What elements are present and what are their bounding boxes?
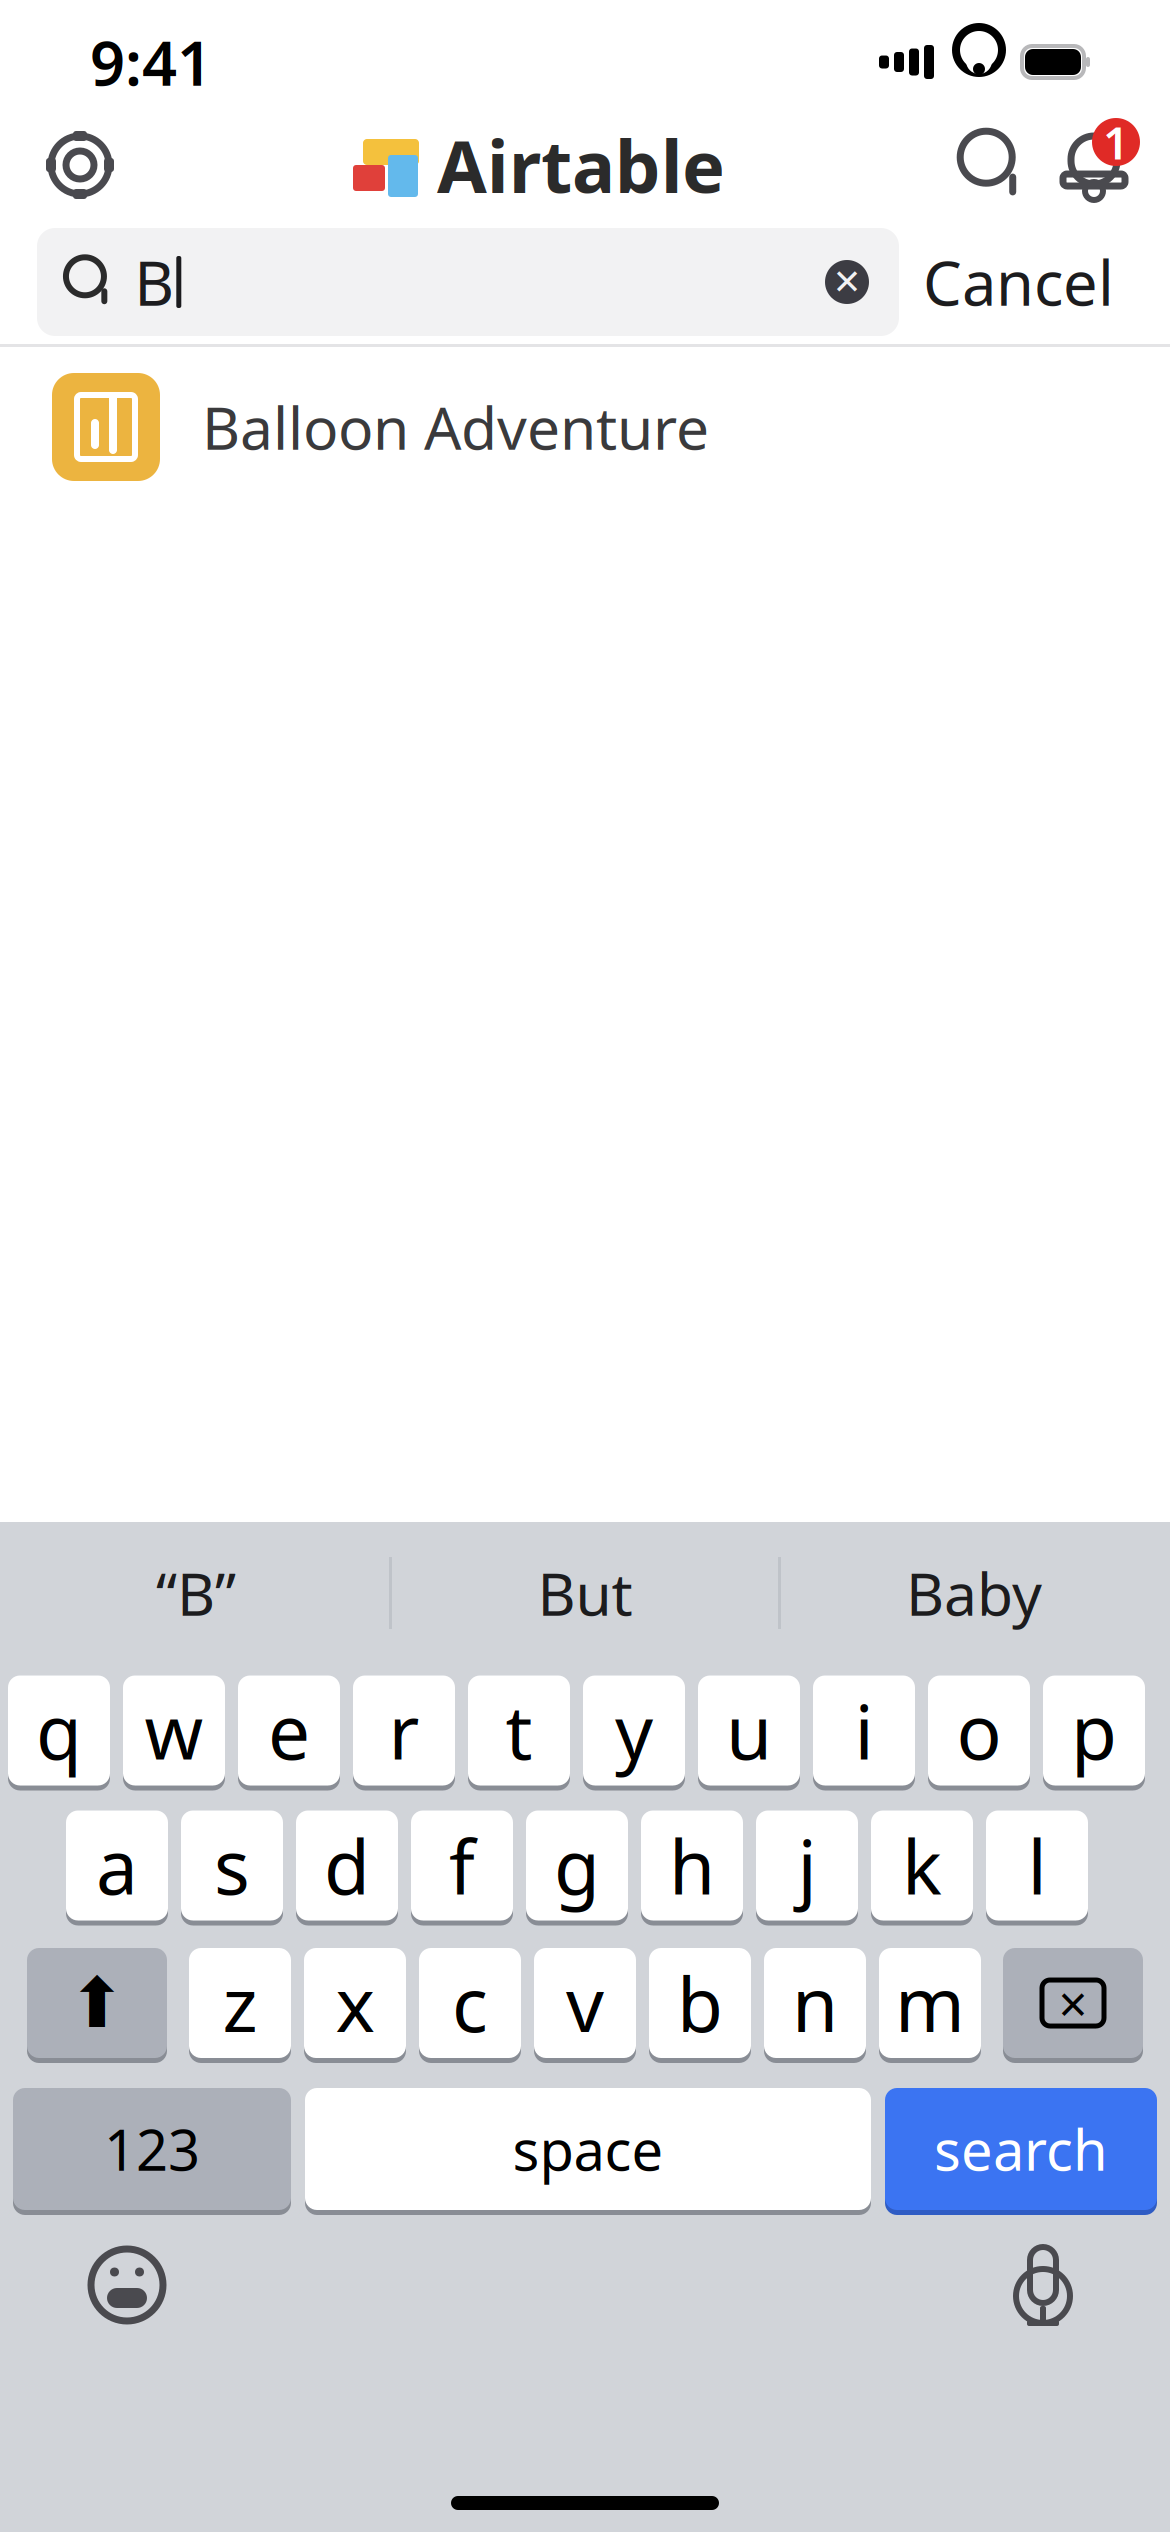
button[interactable]: h bbox=[641, 1810, 743, 1925]
staticText: B bbox=[134, 241, 174, 323]
staticText: o bbox=[956, 1681, 1001, 1780]
staticText: Cancel bbox=[923, 241, 1114, 323]
staticText: h bbox=[669, 1816, 715, 1915]
staticText: Airtable bbox=[437, 117, 725, 213]
button[interactable]: u bbox=[698, 1675, 800, 1790]
staticText: c bbox=[452, 1953, 488, 2053]
button[interactable]: k bbox=[871, 1810, 973, 1925]
staticText: z bbox=[222, 1953, 257, 2053]
staticText: s bbox=[214, 1816, 250, 1915]
staticText: e bbox=[268, 1681, 310, 1780]
staticText: b bbox=[677, 1953, 723, 2053]
button[interactable]: Shift bbox=[27, 1948, 167, 2063]
button[interactable]: d bbox=[296, 1810, 398, 1925]
staticText: w bbox=[144, 1681, 203, 1780]
staticText: “B” bbox=[156, 1554, 236, 1632]
button[interactable]: search bbox=[885, 2088, 1157, 2215]
button[interactable]: Notifications bbox=[1042, 117, 1146, 213]
button[interactable]: i bbox=[813, 1675, 915, 1790]
button[interactable]: Settings bbox=[32, 117, 128, 213]
button[interactable]: But bbox=[392, 1522, 778, 1664]
button[interactable]: g bbox=[526, 1810, 628, 1925]
staticText: t bbox=[505, 1681, 532, 1780]
staticText: 123 bbox=[104, 2112, 200, 2186]
button[interactable]: b bbox=[649, 1948, 751, 2063]
button[interactable]: Balloon Adventure bbox=[0, 347, 1170, 507]
staticText: j bbox=[797, 1816, 816, 1915]
staticText: k bbox=[902, 1816, 942, 1915]
button[interactable]: “B” bbox=[3, 1522, 389, 1664]
staticText: f bbox=[449, 1816, 475, 1915]
button[interactable]: c bbox=[419, 1948, 521, 2063]
staticText: Baby bbox=[906, 1554, 1042, 1632]
staticText: Balloon Adventure bbox=[202, 388, 709, 466]
button[interactable]: v bbox=[534, 1948, 636, 2063]
staticText: ⬆ bbox=[68, 1964, 126, 2042]
staticText: v bbox=[566, 1953, 604, 2053]
staticText: l bbox=[1027, 1816, 1046, 1915]
button[interactable]: t bbox=[468, 1675, 570, 1790]
staticText: But bbox=[537, 1554, 632, 1632]
button[interactable]: Baby bbox=[781, 1522, 1167, 1664]
button[interactable]: y bbox=[583, 1675, 685, 1790]
button[interactable]: a bbox=[66, 1810, 168, 1925]
staticText: g bbox=[554, 1816, 600, 1915]
button[interactable]: f bbox=[411, 1810, 513, 1925]
button[interactable]: Emoji keyboard bbox=[72, 2230, 182, 2340]
staticText: q bbox=[36, 1681, 82, 1780]
staticText: search bbox=[934, 2112, 1108, 2186]
button[interactable]: m bbox=[879, 1948, 981, 2063]
staticText: y bbox=[615, 1681, 653, 1780]
staticText: x bbox=[335, 1953, 374, 2053]
staticText: i bbox=[854, 1681, 873, 1780]
button[interactable]: w bbox=[123, 1675, 225, 1790]
button[interactable]: Delete bbox=[1003, 1948, 1143, 2063]
button[interactable]: n bbox=[764, 1948, 866, 2063]
staticText: r bbox=[388, 1681, 419, 1780]
button[interactable]: space bbox=[305, 2088, 871, 2215]
button[interactable]: Search bbox=[946, 117, 1042, 213]
staticText: u bbox=[726, 1681, 772, 1780]
button[interactable]: s bbox=[181, 1810, 283, 1925]
button[interactable]: 123 bbox=[13, 2088, 291, 2215]
staticText: n bbox=[792, 1953, 838, 2053]
staticText: a bbox=[96, 1816, 138, 1915]
staticText: ✕ bbox=[832, 262, 861, 302]
button[interactable]: j bbox=[756, 1810, 858, 1925]
staticText: d bbox=[324, 1816, 370, 1915]
button[interactable]: l bbox=[986, 1810, 1088, 1925]
button[interactable]: q bbox=[8, 1675, 110, 1790]
staticText: 1 bbox=[1103, 112, 1129, 172]
button[interactable]: Clear text bbox=[811, 246, 883, 318]
staticText: 9:41 bbox=[90, 21, 212, 103]
button[interactable]: z bbox=[189, 1948, 291, 2063]
button[interactable]: r bbox=[353, 1675, 455, 1790]
staticText: p bbox=[1071, 1681, 1117, 1780]
button[interactable]: x bbox=[304, 1948, 406, 2063]
button[interactable]: Cancel bbox=[899, 228, 1138, 336]
staticText: m bbox=[895, 1953, 965, 2053]
staticText: space bbox=[512, 2112, 663, 2186]
button[interactable]: Dictation bbox=[988, 2230, 1098, 2340]
button[interactable]: o bbox=[928, 1675, 1030, 1790]
button[interactable]: e bbox=[238, 1675, 340, 1790]
button[interactable]: p bbox=[1043, 1675, 1145, 1790]
staticText: × bbox=[1058, 1969, 1087, 2037]
